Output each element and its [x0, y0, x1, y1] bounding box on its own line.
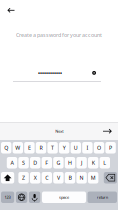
button[interactable]: T — [47, 142, 58, 153]
staticText: J — [81, 159, 82, 166]
button[interactable]: Next field — [96, 121, 118, 141]
button[interactable]: Next keyboard — [16, 191, 27, 203]
staticText: return — [97, 195, 108, 200]
button[interactable]: I — [82, 142, 93, 153]
staticText: C — [45, 174, 48, 181]
button[interactable]: G — [53, 157, 64, 168]
staticText: Y — [63, 144, 66, 151]
staticText: T — [51, 144, 54, 151]
staticText: R — [39, 144, 42, 151]
staticText: 123 — [5, 195, 11, 200]
button[interactable]: Back — [0, 0, 22, 20]
button[interactable]: H — [65, 157, 75, 168]
button[interactable]: D — [30, 157, 40, 168]
staticText: O — [97, 144, 101, 151]
button[interactable]: B — [65, 172, 75, 183]
button[interactable]: F — [42, 157, 52, 168]
staticText: V — [57, 174, 60, 181]
staticText: E — [28, 144, 31, 151]
button[interactable]: E — [24, 142, 35, 153]
button[interactable]: N — [76, 172, 87, 183]
button[interactable]: O — [94, 142, 104, 153]
button[interactable]: K — [88, 157, 98, 168]
button[interactable]: Q — [1, 142, 11, 153]
staticText: space — [59, 195, 69, 200]
staticText: I — [86, 144, 88, 151]
staticText: •••••••••••• — [38, 69, 62, 77]
button[interactable]: M — [88, 172, 98, 183]
staticText: K — [92, 159, 95, 166]
staticText: A — [10, 159, 13, 166]
button[interactable]: L — [100, 157, 110, 168]
button[interactable]: C — [42, 172, 52, 183]
button[interactable]: Delete — [104, 172, 117, 183]
staticText: G — [56, 159, 60, 166]
staticText: Z — [22, 174, 25, 181]
button[interactable]: Z — [18, 172, 29, 183]
button[interactable]: A — [7, 157, 17, 168]
button[interactable]: Dictate — [29, 191, 40, 203]
staticText: M — [91, 174, 96, 181]
button[interactable]: Next — [39, 122, 79, 140]
staticText: Next — [55, 128, 63, 134]
staticText: B — [68, 174, 71, 181]
staticText: D — [33, 159, 37, 166]
button[interactable]: S — [18, 157, 29, 168]
button[interactable]: return — [87, 191, 117, 203]
staticText: S — [22, 159, 25, 166]
button[interactable]: J — [76, 157, 87, 168]
staticText: X — [34, 174, 37, 181]
button[interactable]: 123 — [1, 191, 14, 203]
staticText: Create a password for your account — [16, 31, 102, 39]
button[interactable]: Show password — [88, 67, 100, 79]
button[interactable]: P — [105, 142, 116, 153]
button[interactable]: space — [42, 191, 86, 203]
staticText: L — [103, 159, 106, 166]
button[interactable]: W — [13, 142, 23, 153]
button[interactable]: V — [53, 172, 64, 183]
button[interactable]: X — [30, 172, 40, 183]
button[interactable]: U — [71, 142, 81, 153]
staticText: W — [15, 144, 20, 151]
staticText: H — [68, 159, 72, 166]
staticText: U — [74, 144, 78, 151]
button[interactable]: Y — [59, 142, 69, 153]
staticText: Q — [4, 144, 8, 151]
staticText: P — [109, 144, 112, 151]
staticText: F — [45, 159, 48, 166]
button[interactable]: Shift — [1, 172, 14, 183]
button[interactable]: R — [36, 142, 46, 153]
staticText: N — [80, 174, 84, 181]
